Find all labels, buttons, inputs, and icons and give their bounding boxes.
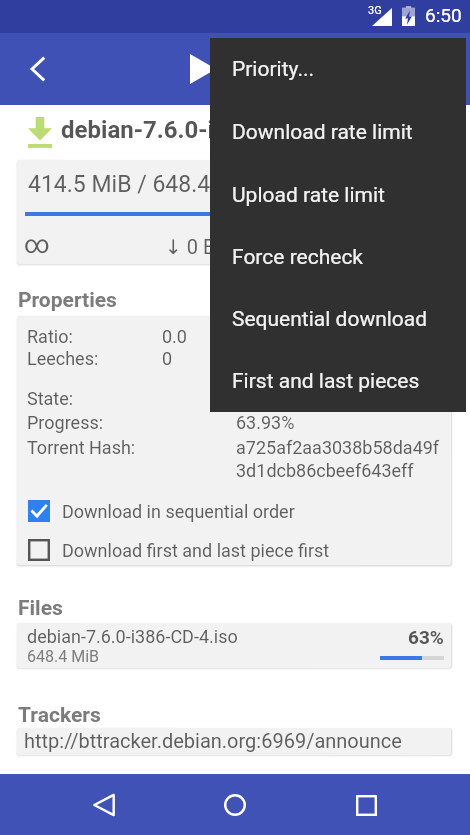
- button[interactable]: debian-7.6.0-i386-CD-4.iso: [17, 623, 451, 668]
- staticText: State:: [27, 388, 74, 409]
- staticText: Sequential download: [232, 307, 428, 332]
- staticText: Files: [18, 596, 63, 621]
- button[interactable]: Start: [178, 45, 226, 93]
- staticText: Download first and last piece first: [62, 540, 330, 561]
- staticText: 0.0: [162, 326, 187, 347]
- staticText: 6:50: [425, 4, 462, 26]
- button[interactable]: Recent apps: [342, 781, 390, 829]
- staticText: Torrent Hash:: [27, 437, 136, 458]
- staticText: Properties: [18, 288, 117, 313]
- staticText: 3G: [368, 4, 382, 17]
- staticText: 63%: [408, 626, 444, 648]
- button[interactable]: Home: [211, 781, 259, 829]
- staticText: Download rate limit: [232, 120, 413, 145]
- button[interactable]: Download rate limit: [210, 101, 466, 164]
- staticText: Force recheck: [232, 245, 364, 270]
- staticText: ↑ 0 B/s: [312, 235, 381, 258]
- staticText: Priority...: [232, 57, 314, 82]
- button[interactable]: Download first and last piece first: [17, 531, 451, 565]
- button[interactable]: Sequential download: [210, 288, 466, 350]
- staticText: 414.5 MiB / 648.4 MiB: [28, 171, 256, 198]
- staticText: Trackers: [18, 703, 101, 728]
- staticText: 63.93%: [236, 412, 295, 433]
- staticText: 0: [162, 348, 173, 369]
- button[interactable]: Priority...: [210, 38, 466, 101]
- button[interactable]: Upload rate limit: [210, 164, 466, 226]
- button[interactable]: Force recheck: [210, 226, 466, 288]
- button[interactable]: http://bttracker.debian.org:6969/announc…: [17, 728, 451, 755]
- staticText: Upload rate limit: [232, 183, 385, 208]
- staticText: Ratio:: [27, 326, 73, 347]
- staticText: ↓ 0 B/s: [165, 235, 234, 258]
- staticText: ∞: [24, 230, 50, 259]
- staticText: 3d1dcb86cbeef643eff: [236, 460, 414, 481]
- staticText: 648.4 MiB: [27, 647, 99, 666]
- button[interactable]: Back: [14, 45, 62, 93]
- staticText: a725af2aa3038b58da49f: [236, 437, 440, 458]
- button[interactable]: Download in sequential order: [17, 492, 451, 530]
- staticText: debian-7.6.0-i386-CD-4.iso: [61, 116, 359, 144]
- staticText: debian-7.6.0-i386-CD-4.iso: [27, 626, 238, 647]
- staticText: http://bttracker.debian.org:6969/announc…: [24, 729, 402, 752]
- button[interactable]: Back: [80, 781, 128, 829]
- staticText: Progress:: [27, 412, 104, 433]
- button[interactable]: First and last pieces: [210, 350, 466, 412]
- staticText: Download in sequential order: [62, 501, 295, 522]
- staticText: First and last pieces: [232, 369, 420, 394]
- staticText: Leeches:: [27, 348, 99, 369]
